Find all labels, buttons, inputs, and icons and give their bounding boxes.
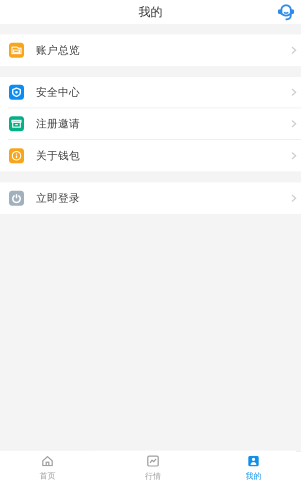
- button[interactable]: 安全中心: [0, 77, 301, 108]
- staticText: 行情: [145, 471, 161, 480]
- button[interactable]: 立即登录: [0, 182, 301, 214]
- button[interactable]: 行情: [95, 452, 211, 480]
- button[interactable]: 客服: [277, 3, 301, 21]
- staticText: 关于钱包: [36, 149, 80, 162]
- staticText: 账户总览: [36, 44, 80, 57]
- staticText: 首页: [39, 471, 55, 480]
- staticText: 我的: [245, 471, 261, 480]
- staticText: 安全中心: [36, 86, 80, 99]
- staticText: 注册邀请: [36, 117, 80, 130]
- button[interactable]: 注册邀请: [0, 108, 301, 140]
- button[interactable]: 首页: [0, 452, 95, 480]
- button[interactable]: 关于钱包: [0, 140, 301, 171]
- button[interactable]: 我的: [211, 452, 296, 480]
- button[interactable]: 账户总览: [0, 34, 301, 66]
- staticText: 立即登录: [36, 192, 80, 205]
- staticText: 我的: [138, 5, 162, 19]
